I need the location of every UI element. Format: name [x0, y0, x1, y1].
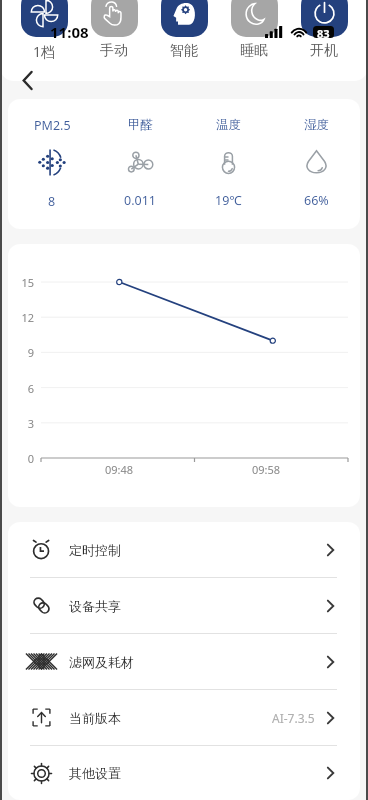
button[interactable]: 甲醛 — [96, 99, 184, 229]
button[interactable]: Back — [13, 66, 41, 94]
button[interactable]: 温度 — [184, 99, 272, 229]
staticText: 滤网及耗材 — [69, 654, 134, 670]
staticText: AI-7.3.5 — [272, 710, 315, 726]
button[interactable]: 睡眠 — [219, 0, 289, 65]
staticText: 其他设置 — [69, 765, 121, 781]
button[interactable]: 设备共享 — [8, 578, 360, 633]
staticText: 温度 — [216, 117, 241, 133]
staticText: 0.011 — [124, 192, 156, 209]
staticText: 6 — [8, 381, 34, 396]
button[interactable]: 开机 — [289, 0, 359, 65]
staticText: 设备共享 — [69, 598, 121, 614]
staticText: 09:58 — [252, 462, 281, 477]
staticText: 19℃ — [215, 192, 242, 209]
staticText: 3 — [8, 416, 34, 431]
staticText: 开机 — [310, 42, 338, 60]
staticText: 1档 — [33, 42, 56, 61]
staticText: 智能 — [170, 42, 198, 60]
button[interactable]: 手动 — [79, 0, 149, 65]
button[interactable]: 滤网及耗材 — [8, 634, 360, 689]
staticText: 66% — [304, 192, 329, 209]
staticText: 9 — [8, 345, 34, 360]
staticText: 睡眠 — [240, 42, 268, 60]
button[interactable]: 智能 — [149, 0, 219, 65]
button[interactable]: 定时控制 — [8, 522, 360, 577]
staticText: 湿度 — [304, 117, 329, 133]
button[interactable]: 其他设置 — [8, 746, 360, 800]
staticText: PM2.5 — [34, 117, 71, 134]
staticText: 手动 — [100, 42, 128, 60]
button[interactable]: 1档 — [9, 0, 79, 66]
staticText: 09:48 — [105, 462, 134, 477]
button[interactable]: 当前版本 — [8, 690, 360, 745]
button[interactable]: PM2.5 — [8, 99, 96, 229]
staticText: 8 — [48, 193, 56, 210]
button[interactable]: 湿度 — [272, 99, 360, 229]
staticText: 定时控制 — [69, 542, 121, 558]
staticText: 12 — [8, 310, 34, 325]
staticText: 11:08 — [50, 22, 89, 42]
staticText: 83 — [317, 26, 330, 38]
staticText: 当前版本 — [69, 710, 121, 726]
staticText: 0 — [8, 451, 34, 466]
staticText: 15 — [8, 275, 34, 290]
staticText: 甲醛 — [128, 117, 153, 133]
